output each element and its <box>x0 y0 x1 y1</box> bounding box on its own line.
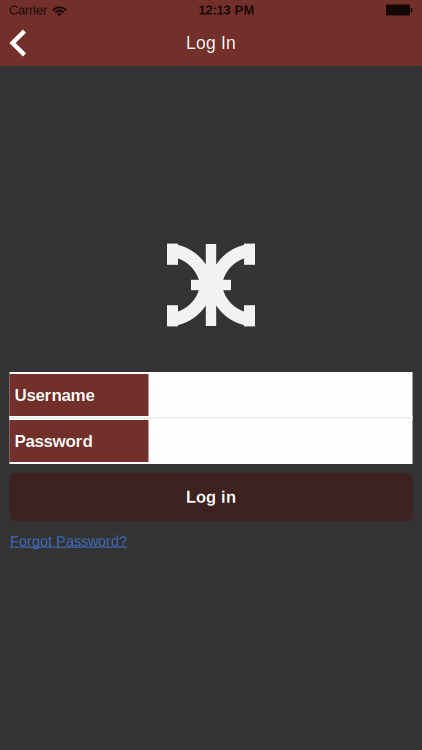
button[interactable]: Log in <box>9 473 412 521</box>
button[interactable]: Back <box>0 20 40 66</box>
staticText: 12:13 PM <box>198 3 254 17</box>
staticText: Username <box>14 385 94 404</box>
staticText: Log in <box>186 488 236 506</box>
staticText: Forgot Password? <box>10 533 127 549</box>
staticText: Password <box>14 431 92 450</box>
button[interactable]: Forgot Password? <box>10 533 127 549</box>
staticText: Log In <box>186 33 236 53</box>
staticText: Carrier <box>9 3 47 17</box>
